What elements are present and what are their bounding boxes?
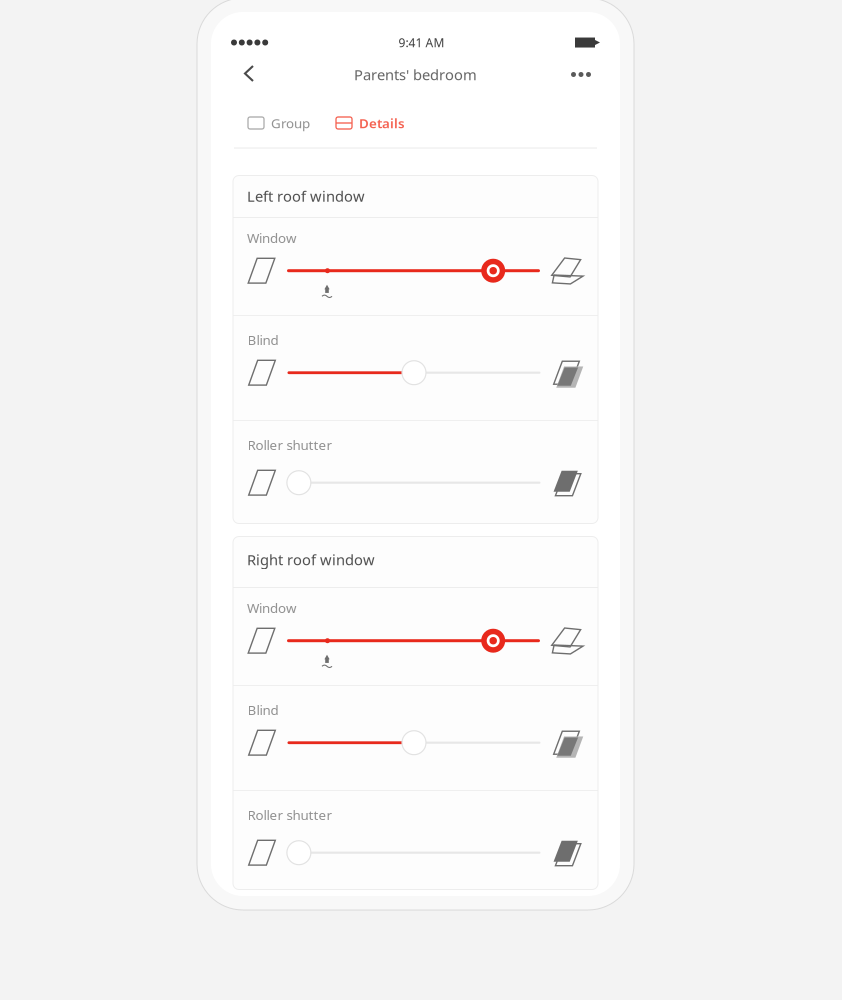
button[interactable]: More options — [557, 65, 611, 92]
staticText: Roller shutter — [247, 806, 332, 824]
staticText: Details — [359, 114, 405, 132]
staticText: Left roof window — [247, 186, 365, 206]
staticText: Group — [271, 114, 310, 132]
staticText: 9:41 AM — [399, 34, 445, 50]
staticText: Blind — [247, 331, 278, 349]
staticText: Right roof window — [247, 550, 375, 569]
button[interactable]: Back — [220, 64, 269, 92]
button[interactable]: Group — [248, 103, 310, 137]
staticText: Blind — [247, 701, 278, 719]
button[interactable]: Details — [336, 103, 405, 137]
staticText: Parents' bedroom — [354, 65, 477, 84]
staticText: Window — [247, 229, 296, 247]
staticText: Roller shutter — [247, 436, 332, 454]
staticText: Window — [247, 599, 296, 617]
